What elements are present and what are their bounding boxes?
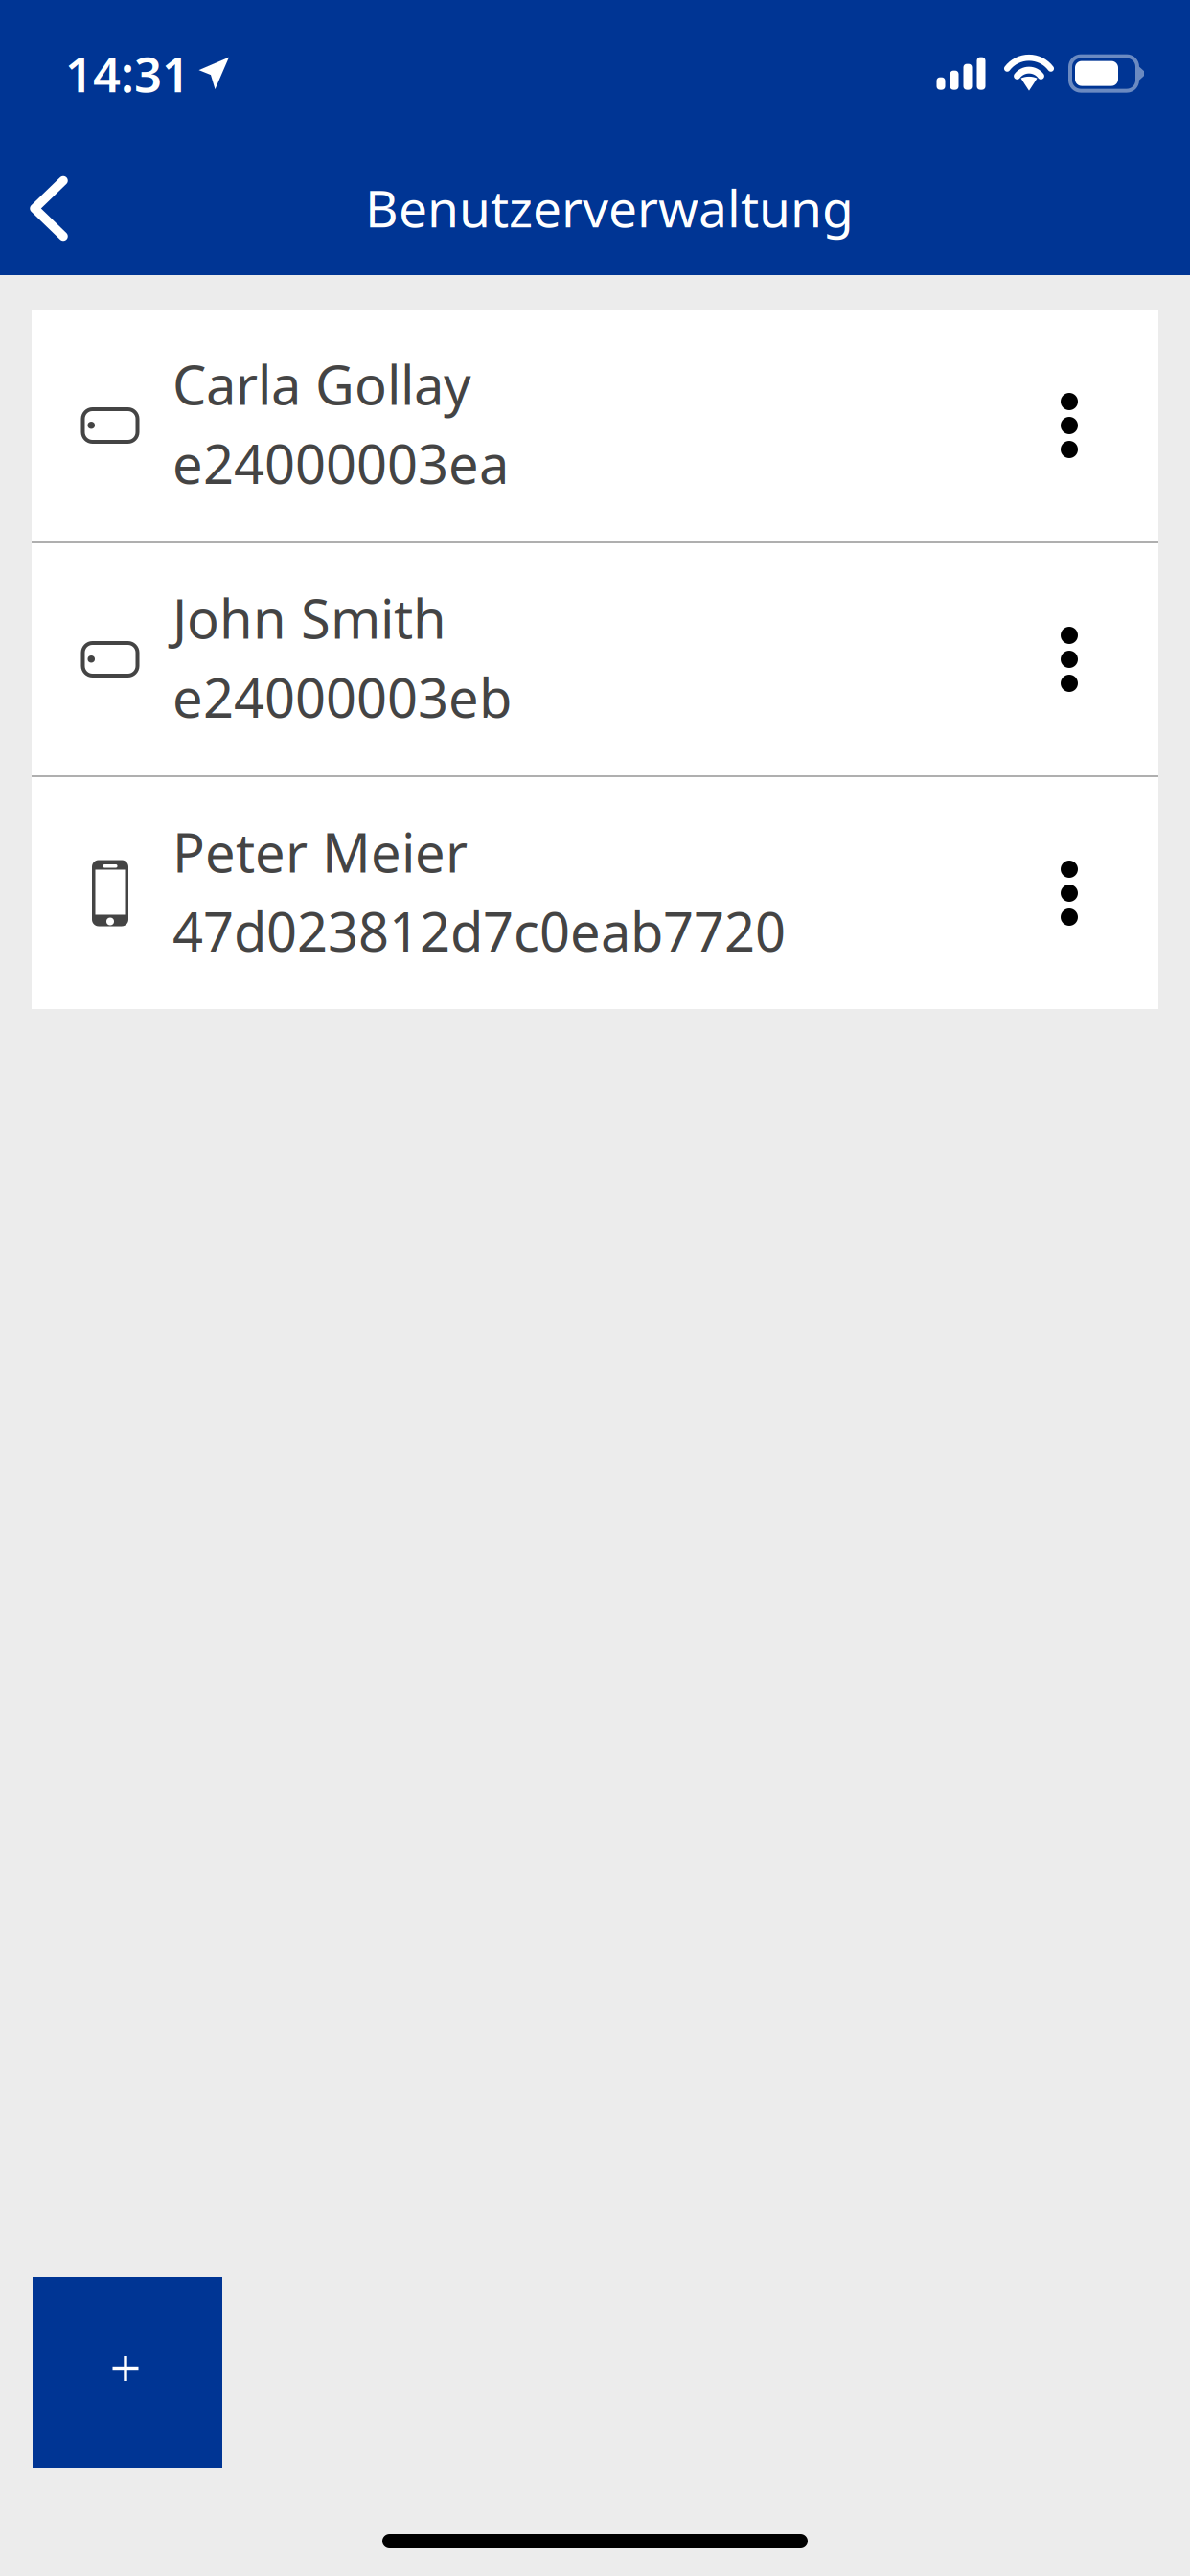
staticText: e24000003eb <box>172 661 512 733</box>
button[interactable]: Add user <box>33 2277 222 2468</box>
button[interactable]: Peter Meier <box>32 777 1158 1009</box>
button[interactable]: More options for John Smith <box>1012 578 1127 741</box>
staticText: Peter Meier <box>172 816 468 887</box>
staticText: John Smith <box>172 582 446 654</box>
staticText: Benutzerverwaltung <box>365 174 854 241</box>
button[interactable]: More options for Peter Meier <box>1012 812 1127 975</box>
staticText: Carla Gollay <box>172 348 471 420</box>
button[interactable]: Back <box>0 127 103 275</box>
button[interactable]: Carla Gollay <box>32 310 1158 541</box>
button[interactable]: John Smith <box>32 543 1158 775</box>
staticText: 47d023812d7c0eab7720 <box>172 895 786 966</box>
staticText: 14:31 <box>65 41 190 106</box>
staticText: e24000003ea <box>172 427 509 499</box>
button[interactable]: More options for Carla Gollay <box>1012 344 1127 507</box>
